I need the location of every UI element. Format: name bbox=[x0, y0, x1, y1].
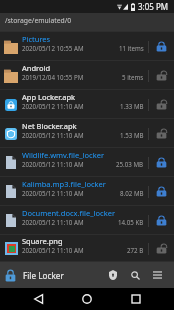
staticText: 2019/12/04 10:55 PM bbox=[22, 73, 84, 81]
button[interactable]: Menu bbox=[146, 262, 168, 288]
button[interactable]: Search bbox=[124, 262, 146, 288]
staticText: 2020/05/12 11:10 AM bbox=[22, 246, 84, 254]
staticText: Android bbox=[22, 63, 51, 73]
staticText: Square.png bbox=[22, 236, 63, 246]
button[interactable]: File Locker bbox=[0, 262, 102, 288]
button[interactable]: Wildlife.wmv.file_locker bbox=[0, 148, 174, 177]
button[interactable]: Net Blocker.apk bbox=[0, 119, 174, 148]
button[interactable]: Unlock bbox=[149, 206, 174, 235]
staticText: Kalimba.mp3.file_locker bbox=[22, 179, 106, 189]
button[interactable]: Lock bbox=[149, 235, 174, 262]
staticText: Document.docx.file_locker bbox=[22, 208, 115, 218]
staticText: 14.05 KB bbox=[118, 218, 144, 226]
button[interactable]: Document.docx.file_locker bbox=[0, 206, 174, 235]
button[interactable]: Android bbox=[0, 61, 174, 90]
staticText: 25.03 MB bbox=[116, 160, 144, 168]
staticText: 2020/05/12 11:10 AM bbox=[22, 218, 84, 226]
button[interactable]: Recents bbox=[125, 288, 147, 310]
staticText: 2020/05/12 11:10 AM bbox=[22, 131, 84, 139]
button[interactable]: Unlock bbox=[149, 32, 174, 61]
button[interactable]: Pictures bbox=[0, 32, 174, 61]
button[interactable]: Lock bbox=[149, 119, 174, 148]
staticText: 2020/05/12 11:10 AM bbox=[22, 160, 84, 168]
staticText: Pictures bbox=[22, 34, 51, 44]
staticText: 3:05 PM bbox=[138, 1, 169, 12]
staticText: 1.53 MB bbox=[120, 131, 144, 139]
staticText: 11 items bbox=[119, 44, 144, 52]
staticText: Net Blocker.apk bbox=[22, 121, 77, 131]
button[interactable]: Lock bbox=[149, 90, 174, 119]
staticText: 8.02 MB bbox=[120, 189, 144, 197]
staticText: 272 B bbox=[127, 246, 144, 254]
staticText: /storage/emulated/0 bbox=[5, 16, 72, 25]
button[interactable]: Lock bbox=[149, 61, 174, 90]
button[interactable]: Unlock bbox=[149, 177, 174, 206]
staticText: 5 items bbox=[122, 73, 144, 81]
staticText: 2020/05/12 11:10 AM bbox=[22, 102, 84, 110]
staticText: 2020/05/12 10:55 AM bbox=[22, 44, 84, 52]
button[interactable]: /storage/emulated/0 bbox=[0, 13, 174, 32]
button[interactable]: Unlock bbox=[149, 148, 174, 177]
button[interactable]: Back bbox=[27, 288, 49, 310]
button[interactable]: Square.png bbox=[0, 235, 174, 262]
button[interactable]: Kalimba.mp3.file_locker bbox=[0, 177, 174, 206]
button[interactable]: App Locker.apk bbox=[0, 90, 174, 119]
staticText: App Locker.apk bbox=[22, 92, 76, 102]
button[interactable]: Protect bbox=[102, 262, 124, 288]
button[interactable]: Home bbox=[76, 288, 98, 310]
staticText: 2020/05/12 11:10 AM bbox=[22, 189, 84, 197]
staticText: 1.33 MB bbox=[120, 102, 144, 110]
staticText: File Locker bbox=[23, 270, 64, 281]
staticText: Wildlife.wmv.file_locker bbox=[22, 150, 104, 160]
